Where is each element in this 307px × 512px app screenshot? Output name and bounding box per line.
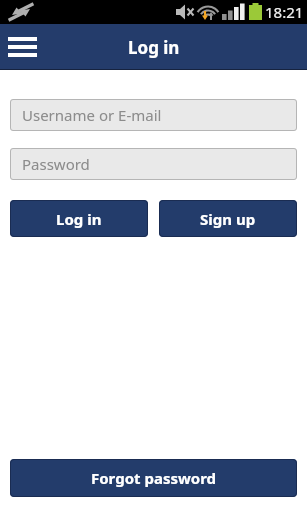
staticText: Username or E-mail — [22, 105, 162, 125]
button[interactable] — [8, 37, 37, 57]
staticText: Sign up — [200, 209, 256, 229]
staticText: Forgot password — [91, 468, 217, 488]
staticText: Log in — [56, 209, 102, 229]
staticText: 18:21 — [265, 2, 304, 22]
staticText: Log in — [128, 36, 180, 59]
staticText: Password — [22, 154, 90, 174]
button[interactable]: Log in — [10, 200, 148, 237]
button[interactable]: Forgot password — [10, 459, 297, 497]
button[interactable]: Password — [10, 148, 297, 180]
button[interactable]: Sign up — [159, 200, 297, 237]
button[interactable]: Username or E-mail — [10, 99, 297, 131]
